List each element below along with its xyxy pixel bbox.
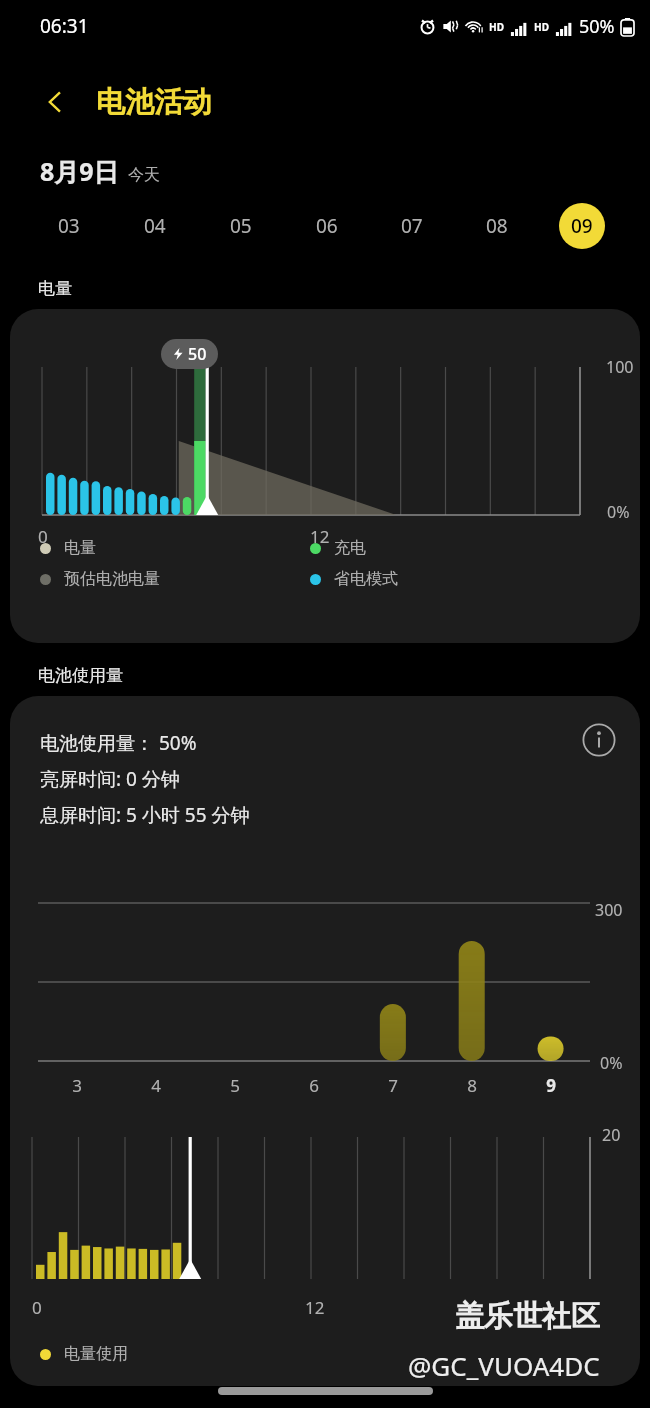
staticText: 充电 <box>334 538 366 558</box>
staticText: 8月9日 <box>40 154 119 188</box>
staticText: 100 <box>606 356 634 378</box>
staticText: 08 <box>486 213 508 239</box>
staticText: 省电模式 <box>334 569 398 589</box>
staticText: 电池使用量 <box>38 665 123 686</box>
staticText: 7 <box>388 1074 398 1097</box>
staticText: 预估电池电量 <box>64 569 160 589</box>
staticText: 12 <box>310 525 330 548</box>
staticText: 息屏时间: 5 小时 55 分钟 <box>40 802 250 828</box>
button[interactable]: 信息 <box>578 719 620 761</box>
staticText: 09 <box>571 213 593 239</box>
staticText: 05 <box>230 213 252 239</box>
button[interactable]: 返回 <box>32 78 80 126</box>
staticText: 4 <box>151 1074 161 1097</box>
staticText: 06:31 <box>40 13 89 39</box>
button[interactable]: 06 <box>284 197 369 255</box>
staticText: 电量使用 <box>64 1344 128 1364</box>
staticText: 亮屏时间: 0 分钟 <box>40 766 180 792</box>
staticText: 5 <box>230 1074 240 1097</box>
staticText: 9 <box>546 1074 556 1097</box>
staticText: 8 <box>467 1074 477 1097</box>
staticText: 电量 <box>38 278 72 299</box>
staticText: 0% <box>607 501 630 523</box>
staticText: 电池使用量： 50% <box>40 730 197 756</box>
staticText: @GC_VUOA4DC <box>408 1348 600 1383</box>
staticText: HD <box>534 20 549 34</box>
staticText: 0 <box>32 1296 42 1319</box>
staticText: 电池活动 <box>96 84 212 121</box>
staticText: 0 <box>38 525 48 548</box>
staticText: 03 <box>58 213 80 239</box>
staticText: 04 <box>144 213 166 239</box>
button[interactable]: 04 <box>112 197 198 255</box>
staticText: HD <box>489 20 504 34</box>
button[interactable]: 09 <box>539 197 624 255</box>
button[interactable]: 05 <box>198 197 284 255</box>
staticText: 50 <box>188 343 207 365</box>
staticText: 07 <box>401 213 423 239</box>
staticText: 6 <box>309 1074 319 1097</box>
staticText: 3 <box>72 1074 82 1097</box>
staticText: 0% <box>600 1052 623 1074</box>
staticText: 电量 <box>64 538 96 558</box>
staticText: 300 <box>595 899 623 921</box>
staticText: 12 <box>305 1296 325 1319</box>
staticText: 50% <box>579 14 615 39</box>
staticText: 盖乐世社区 <box>455 1298 600 1335</box>
staticText: 06 <box>316 213 338 239</box>
button[interactable]: 07 <box>369 197 454 255</box>
staticText: 今天 <box>128 165 160 185</box>
button[interactable]: 08 <box>454 197 539 255</box>
staticText: 20 <box>602 1124 621 1146</box>
button[interactable]: 100 <box>10 309 640 643</box>
button[interactable]: 03 <box>26 197 112 255</box>
